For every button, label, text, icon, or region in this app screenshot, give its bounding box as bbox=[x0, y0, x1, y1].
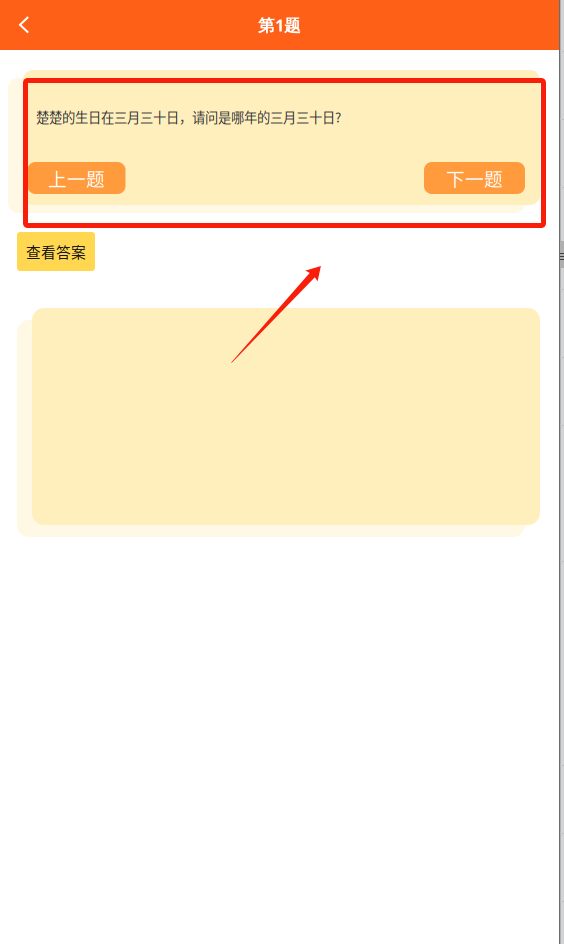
staticText: 第1题 bbox=[258, 14, 301, 36]
staticText: 上一题 bbox=[48, 164, 105, 191]
button[interactable]: 上一题 bbox=[27, 162, 125, 194]
button[interactable]: 下一题 bbox=[424, 162, 525, 194]
button[interactable]: 查看答案 bbox=[17, 232, 95, 271]
button[interactable]: Back bbox=[9, 3, 53, 47]
staticText: 楚楚的生日在三月三十日，请问是哪年的三月三十日? bbox=[36, 107, 341, 126]
staticText: 查看答案 bbox=[26, 241, 86, 262]
staticText: 下一题 bbox=[446, 164, 503, 191]
